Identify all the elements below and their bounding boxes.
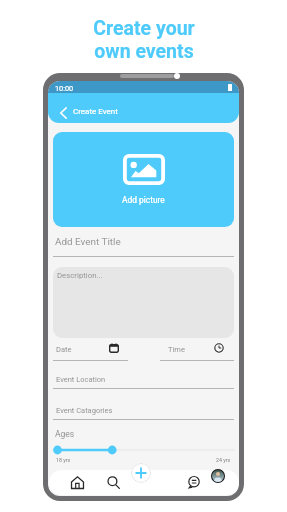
button[interactable]: Home — [64, 470, 90, 495]
button[interactable]: Search — [100, 470, 126, 495]
staticText: Description... — [57, 271, 103, 280]
staticText: Add Event Title — [55, 236, 121, 248]
staticText: Ages — [55, 429, 75, 439]
staticText: 24 yrs — [216, 457, 231, 463]
staticText: Create your — [93, 17, 195, 40]
staticText: Time — [168, 345, 185, 354]
staticText: 10:00 — [55, 84, 74, 93]
button[interactable]: Description... — [53, 267, 234, 338]
button[interactable]: Profile — [211, 469, 225, 483]
staticText: own events — [94, 40, 194, 63]
button[interactable]: Pick time — [214, 343, 224, 353]
staticText: Add picture — [122, 195, 165, 205]
staticText: Date — [56, 345, 72, 354]
button[interactable]: Add event — [131, 463, 151, 483]
button[interactable]: Add picture — [53, 132, 234, 227]
staticText: Event Catagories — [56, 406, 113, 415]
button[interactable]: Pick date — [109, 343, 119, 353]
button[interactable]: Messages — [180, 470, 206, 495]
button[interactable]: Back — [54, 104, 72, 122]
staticText: 18 yrs — [56, 457, 71, 463]
staticText: Event Location — [56, 375, 106, 384]
staticText: Create Event — [73, 107, 118, 116]
